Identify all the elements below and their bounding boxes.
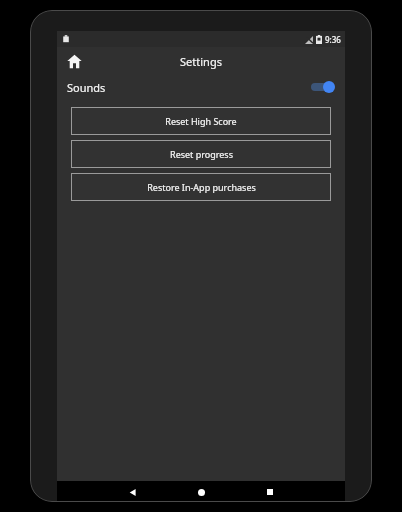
button[interactable]: Recent apps bbox=[260, 482, 280, 502]
button[interactable]: Restore In-App purchases bbox=[71, 173, 331, 201]
staticText: Sounds bbox=[67, 80, 106, 95]
staticText: Reset progress bbox=[170, 148, 233, 160]
staticText: Reset High Score bbox=[165, 115, 237, 127]
button[interactable]: Home bbox=[63, 50, 85, 72]
staticText: 9:36 bbox=[325, 34, 341, 45]
staticText: Restore In-App purchases bbox=[147, 181, 256, 193]
button[interactable]: Sounds bbox=[57, 75, 345, 99]
button[interactable]: Home bbox=[191, 482, 211, 502]
button[interactable]: Sounds toggle bbox=[309, 80, 335, 94]
button[interactable]: Back bbox=[122, 482, 142, 502]
staticText: Settings bbox=[180, 54, 222, 69]
button[interactable]: Reset progress bbox=[71, 140, 331, 168]
button[interactable]: Reset High Score bbox=[71, 107, 331, 135]
